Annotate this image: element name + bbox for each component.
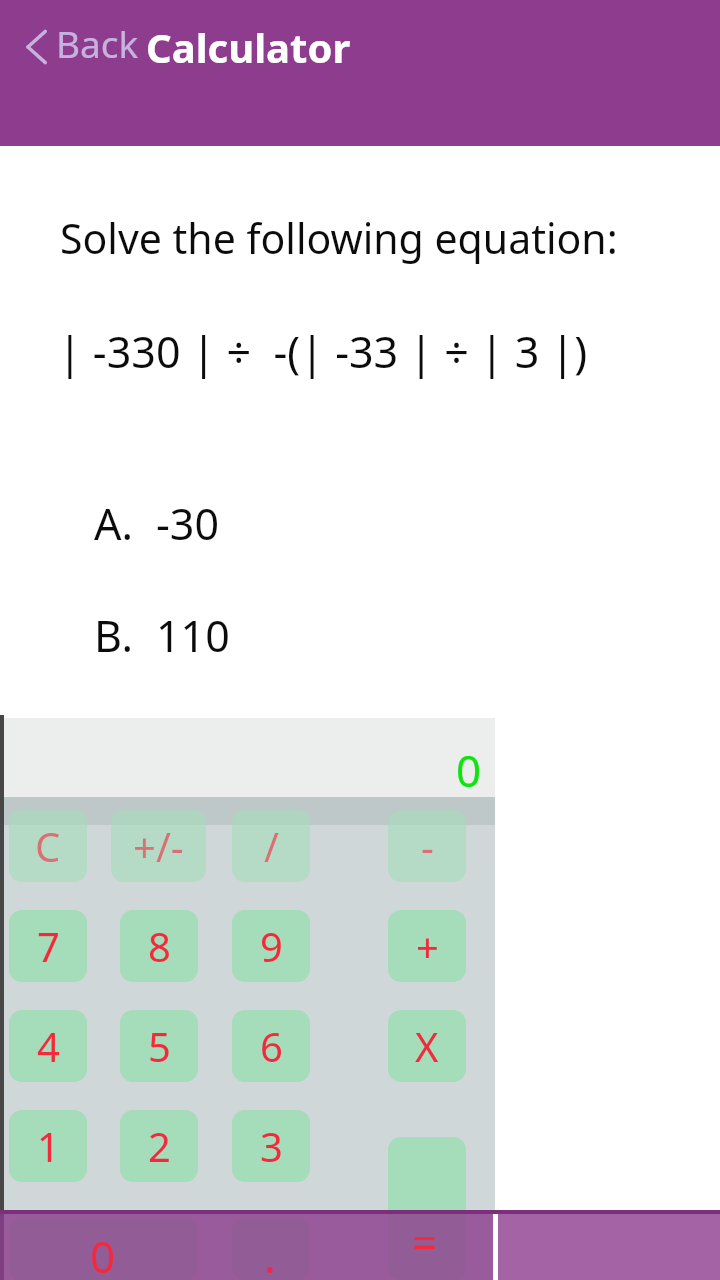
button[interactable]: 5: [120, 1010, 198, 1082]
button[interactable]: 2: [120, 1110, 198, 1182]
button[interactable]: 4: [9, 1010, 87, 1082]
staticText: -: [421, 819, 434, 873]
button[interactable]: +/-: [111, 810, 206, 882]
staticText: 2: [148, 1119, 171, 1173]
button[interactable]: B.: [60, 602, 460, 666]
staticText: 6: [260, 1019, 283, 1073]
staticText: -30: [156, 494, 220, 553]
staticText: 9: [260, 919, 283, 973]
staticText: Calculator: [146, 20, 351, 74]
button[interactable]: /: [232, 810, 310, 882]
staticText: 0: [90, 1226, 116, 1280]
button[interactable]: -: [388, 810, 466, 882]
staticText: 3: [260, 1119, 283, 1173]
staticText: 1: [37, 1119, 60, 1173]
button[interactable]: X: [388, 1010, 466, 1082]
button[interactable]: C.: [60, 714, 460, 778]
staticText: 110: [156, 606, 230, 665]
button[interactable]: 8: [120, 910, 198, 982]
button[interactable]: C: [9, 810, 87, 882]
button[interactable]: decimal point: [232, 1218, 310, 1280]
staticText: Solve the following equation:: [60, 210, 618, 266]
staticText: D.: [94, 830, 136, 889]
staticText: +/-: [133, 819, 184, 873]
button[interactable]: Equals: [388, 1137, 466, 1280]
staticText: B.: [94, 606, 134, 665]
button[interactable]: 1: [9, 1110, 87, 1182]
button[interactable]: +: [388, 910, 466, 982]
staticText: 7: [37, 919, 60, 973]
button[interactable]: Back: [16, 12, 144, 80]
staticText: Back: [56, 18, 139, 68]
staticText: =: [412, 1212, 438, 1272]
staticText: .: [264, 1226, 276, 1280]
button[interactable]: 9: [232, 910, 310, 982]
staticText: /: [264, 819, 279, 873]
button[interactable]: D.: [60, 826, 460, 890]
staticText: +: [416, 919, 439, 973]
button[interactable]: 0: [9, 1218, 198, 1280]
staticText: A.: [94, 494, 134, 553]
staticText: C: [35, 819, 61, 873]
staticText: 5: [148, 1019, 171, 1073]
staticText: | -330 | ÷ -(| -33 | ÷ | 3 |): [58, 322, 588, 381]
staticText: 30: [156, 830, 206, 889]
button[interactable]: 3: [232, 1110, 310, 1182]
staticText: 0: [456, 740, 482, 800]
staticText: 8: [148, 919, 171, 973]
staticText: 4: [37, 1019, 60, 1073]
button[interactable]: 6: [232, 1010, 310, 1082]
button[interactable]: A.: [60, 490, 460, 554]
button[interactable]: 7: [9, 910, 87, 982]
staticText: X: [415, 1019, 439, 1073]
